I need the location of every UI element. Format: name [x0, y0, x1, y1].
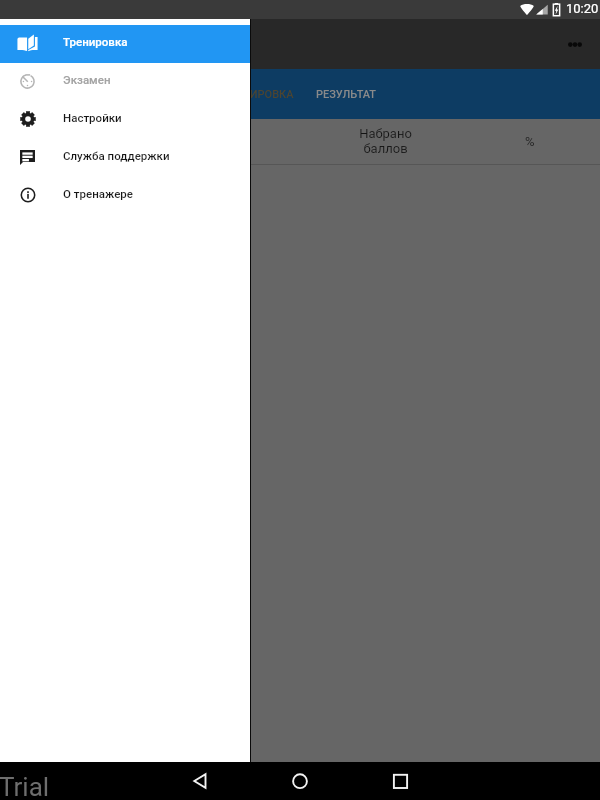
button[interactable]: Настройки: [0, 101, 250, 139]
staticText: РЕЗУЛЬТАТ: [316, 88, 377, 101]
button[interactable]: Тренировка: [0, 25, 250, 63]
button[interactable]: ТРЕНИРОВКА: [200, 69, 316, 119]
staticText: 10:20: [566, 1, 599, 16]
staticText: %: [525, 134, 535, 149]
staticText: Trial: [0, 772, 50, 800]
staticText: Тренировка: [63, 35, 128, 48]
button[interactable]: More options: [552, 20, 600, 68]
staticText: Служба поддержки: [63, 149, 170, 162]
staticText: ТРЕНИРОВКА: [222, 88, 294, 101]
staticText: Настройки: [63, 111, 122, 124]
button[interactable]: О тренажере: [0, 177, 250, 215]
button[interactable]: РЕЗУЛЬТАТ: [316, 69, 432, 119]
button[interactable]: Служба поддержки: [0, 139, 250, 177]
staticText: Набрано баллов: [359, 126, 412, 157]
staticText: Экзамен: [63, 73, 111, 86]
staticText: О тренажере: [63, 187, 133, 200]
button[interactable]: Экзамен: [0, 63, 250, 101]
